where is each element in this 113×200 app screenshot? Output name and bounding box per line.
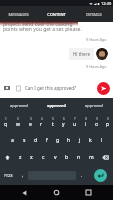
staticText: Can I get this approved? (25, 85, 77, 91)
staticText: 3 (30, 117, 32, 121)
staticText: t (52, 121, 54, 128)
button[interactable]: h (63, 132, 74, 149)
staticText: e (29, 121, 32, 128)
staticText: y (62, 121, 65, 128)
staticText: CONTENT (47, 12, 66, 17)
staticText: s (23, 137, 26, 144)
staticText: a (11, 137, 14, 144)
button[interactable]: f (41, 132, 52, 149)
staticText: p (106, 121, 110, 128)
button[interactable]: b (61, 149, 73, 166)
button[interactable]: j (74, 132, 85, 149)
button[interactable]: 9 (91, 112, 102, 132)
staticText: u (73, 121, 77, 128)
staticText: ?123 (4, 173, 13, 178)
staticText: c (42, 154, 45, 161)
staticText: h (67, 137, 71, 144)
staticText: x (30, 154, 33, 161)
staticText: l (101, 137, 103, 144)
staticText: 1 (5, 117, 7, 121)
button[interactable]: Attach photo (3, 84, 11, 92)
staticText: . (81, 172, 83, 179)
staticText: i (85, 121, 87, 128)
button[interactable]: approved (0, 98, 37, 112)
staticText: MESSAGES (8, 12, 29, 17)
staticText: approved (10, 103, 28, 108)
staticText: b (65, 154, 69, 161)
staticText: r (40, 121, 43, 128)
button[interactable]: v (49, 149, 61, 166)
staticText: 8 (85, 117, 87, 121)
button[interactable]: DETAILS (75, 6, 113, 22)
staticText: 4 (41, 117, 43, 121)
staticText: q (4, 121, 8, 128)
button[interactable]: 2 (12, 112, 24, 132)
button[interactable]: z (15, 149, 26, 166)
button[interactable]: k (85, 132, 96, 149)
button[interactable]: Enter (94, 169, 107, 182)
staticText: j (79, 137, 81, 144)
button[interactable]: Attach file (14, 84, 22, 92)
staticText: , (22, 172, 24, 179)
button[interactable]: x (26, 149, 37, 166)
staticText: approved (85, 103, 103, 108)
button[interactable]: , (17, 166, 28, 185)
button[interactable]: Recents (81, 185, 96, 200)
button[interactable]: 6 (58, 112, 69, 132)
staticText: f (46, 137, 48, 144)
button[interactable]: approved (37, 98, 75, 112)
staticText: 5 (52, 117, 54, 121)
button[interactable]: a (6, 132, 18, 149)
button[interactable]: m (85, 149, 97, 166)
button[interactable]: Back (17, 185, 32, 200)
button[interactable]: n (73, 149, 85, 166)
button[interactable]: 0 (102, 112, 113, 132)
staticText: v (54, 154, 57, 161)
staticText: 12:30 (101, 1, 112, 6)
button[interactable]: MESSAGES (0, 6, 37, 22)
staticText: k (89, 137, 92, 144)
staticText: points when you get a sec please. (3, 26, 82, 33)
button[interactable]: l (96, 132, 107, 149)
button[interactable]: Hi there (73, 51, 90, 57)
staticText: n (77, 154, 81, 161)
staticText: 6 (63, 117, 65, 121)
staticText: Hi there (73, 51, 90, 57)
staticText: project, send over the tasking (3, 21, 73, 28)
button[interactable]: approved (75, 98, 113, 112)
button[interactable]: ?123 (0, 166, 17, 185)
staticText: DETAILS (86, 12, 102, 17)
button[interactable]: Send (97, 82, 110, 95)
staticText: o (95, 121, 99, 128)
staticText: 9 Hours Ago (86, 37, 107, 42)
staticText: 0 (107, 117, 109, 121)
button[interactable]: CONTENT (37, 6, 75, 22)
button[interactable]: Backspace (97, 149, 113, 166)
button[interactable]: 5 (47, 112, 58, 132)
staticText: 9 (96, 117, 98, 121)
staticText: 9 Hours Ago (86, 64, 107, 69)
staticText: w (16, 121, 20, 128)
button[interactable]: 1 (0, 112, 12, 132)
button[interactable]: 7 (69, 112, 80, 132)
button[interactable]: 8 (80, 112, 91, 132)
staticText: z (19, 154, 22, 161)
button[interactable]: s (18, 132, 30, 149)
button[interactable]: Shift (0, 149, 15, 166)
button[interactable] (96, 48, 108, 60)
button[interactable]: g (52, 132, 63, 149)
staticText: m (89, 154, 94, 161)
button[interactable]: 4 (36, 112, 47, 132)
staticText: g (56, 137, 60, 144)
staticText: approved (47, 103, 66, 108)
staticText: 2 (17, 117, 19, 121)
button[interactable]: d (30, 132, 41, 149)
button[interactable]: Home (49, 185, 64, 200)
staticText: d (34, 137, 38, 144)
button[interactable]: . (76, 166, 87, 185)
button[interactable]: c (37, 149, 49, 166)
staticText: 7 (74, 117, 76, 121)
button[interactable]: 3 (24, 112, 36, 132)
